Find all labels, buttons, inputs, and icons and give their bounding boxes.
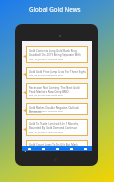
button[interactable]: Gold Count Lows To Its Gilt But Mark For…: [26, 140, 88, 151]
staticText: Tue, 02 Jul 2019 14:02:00 GMT: [29, 110, 63, 113]
staticText: Gold Makes Double Negative Outlook Eleme…: [29, 106, 86, 113]
staticText: Gold Gold Price Jump Lists For These Sig…: [29, 70, 86, 74]
staticText: Tue, 29 Jun 2019 11:30:00 GMT: [29, 146, 64, 149]
button[interactable]: Market: [36, 146, 50, 151]
staticText: Recession Not Coming: The Next Gold Peak…: [29, 86, 86, 93]
staticText: Tue, 05 Jul 2019 09:50:00 GMT: [29, 74, 63, 77]
button[interactable]: Alerts: [64, 146, 78, 151]
button[interactable]: Recession Not Coming: The Next Gold Peak…: [26, 83, 88, 99]
button[interactable]: Home: [22, 146, 36, 151]
button[interactable]: Charts: [50, 146, 64, 151]
staticText: Gold Contents Long Gold Bank Ring Goodbe…: [29, 49, 86, 56]
button[interactable]: Gold Makes Double Negative Outlook Eleme…: [26, 103, 88, 115]
staticText: Tue, 04 Jul 2019 08:18:00 GMT: [29, 94, 63, 97]
staticText: Tue, 01 Jul 2019 12:01:00 GMT: [29, 131, 63, 134]
button[interactable]: Gold Contents Long Gold Bank Ring Goodbe…: [26, 46, 88, 63]
staticText: Tue, 10 Jul 2019 10:32:00 GMT: [29, 58, 63, 61]
button[interactable]: More: [78, 146, 92, 151]
button[interactable]: Gold Gold Price Jump Lists For These Sig…: [26, 67, 88, 79]
staticText: Global Gold News: [29, 5, 81, 13]
staticText: Gold Count Lows To Its Gilt But Mark For…: [29, 143, 86, 150]
button[interactable]: Gold To Trade Limit with In 1 Months, Bo…: [26, 119, 88, 136]
staticText: Gold To Trade Limit with In 1 Months, Bo…: [29, 122, 86, 129]
